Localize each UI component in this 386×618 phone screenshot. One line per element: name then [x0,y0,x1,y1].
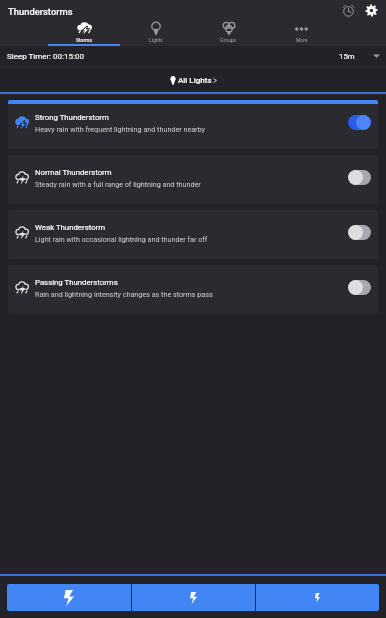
staticText: Sleep Timer: 00:15:00 [7,52,84,61]
staticText: Passing Thunderstorms [35,278,118,287]
staticText: Lights [149,37,163,43]
staticText: Heavy rain with frequent lightning and t… [35,125,205,133]
button[interactable]: Groups [192,18,265,46]
button[interactable]: Strong Thunderstorm [8,100,378,149]
button[interactable]: Sleep Timer: 00:15:00 [0,46,386,66]
staticText: Groups [220,37,237,43]
staticText: Storms [76,37,93,43]
staticText: Normal Thunderstorm [35,168,112,177]
staticText: Thunderstorms [8,6,73,17]
staticText: Light rain with occasional lightning and… [35,235,208,243]
staticText: Steady rain with a full range of lightni… [35,180,201,188]
staticText: Strong Thunderstorm [35,113,109,122]
button[interactable]: Lightning [7,584,131,611]
staticText: 15m [339,52,355,61]
button[interactable]: Weak Thunderstorm [8,210,378,259]
button[interactable]: Toggle off [348,225,371,240]
button[interactable]: Sleep timer [338,0,359,21]
button[interactable]: Toggle off [348,170,371,185]
button[interactable]: Toggle on [348,115,371,130]
button[interactable]: More [265,18,338,46]
button[interactable]: Lightning [256,584,379,611]
button[interactable]: Passing Thunderstorms [8,265,378,314]
staticText: More [296,37,308,43]
staticText: Weak Thunderstorm [35,223,106,232]
button[interactable]: Storms [48,18,120,46]
staticText: All Lights [178,76,212,85]
button[interactable]: Normal Thunderstorm [8,155,378,204]
button[interactable]: Settings [361,0,382,21]
button[interactable]: Lightning [132,584,255,611]
staticText: Rain and lightning intensity changes as … [35,290,213,298]
button[interactable]: All Lights [0,68,386,92]
button[interactable]: Toggle off [348,280,371,295]
button[interactable]: Lights [120,18,192,46]
